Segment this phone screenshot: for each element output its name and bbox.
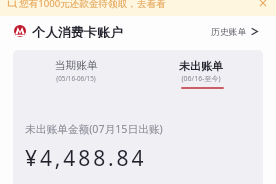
button[interactable]: 关闭 bbox=[259, 0, 267, 7]
staticText: 历史账单 bbox=[211, 26, 247, 37]
staticText: 您有1000元还款金待领取，去看看 bbox=[19, 0, 166, 10]
button[interactable]: 历史账单 bbox=[211, 26, 259, 37]
staticText: (05/16-06/15) bbox=[56, 74, 96, 83]
button[interactable]: 您有1000元还款金待领取，去看看 bbox=[0, 0, 276, 16]
button[interactable]: 未出账单 bbox=[138, 50, 263, 84]
staticText: 未出账单 bbox=[179, 59, 223, 73]
staticText: 未出账单金额(07月15日出账) bbox=[25, 122, 163, 137]
staticText: 个人消费卡账户 bbox=[32, 24, 123, 38]
staticText: ¥4,488.84 bbox=[25, 144, 147, 173]
staticText: (06/16-至今) bbox=[181, 74, 221, 84]
button[interactable]: 当期账单 bbox=[13, 50, 138, 83]
staticText: 当期账单 bbox=[54, 59, 98, 73]
